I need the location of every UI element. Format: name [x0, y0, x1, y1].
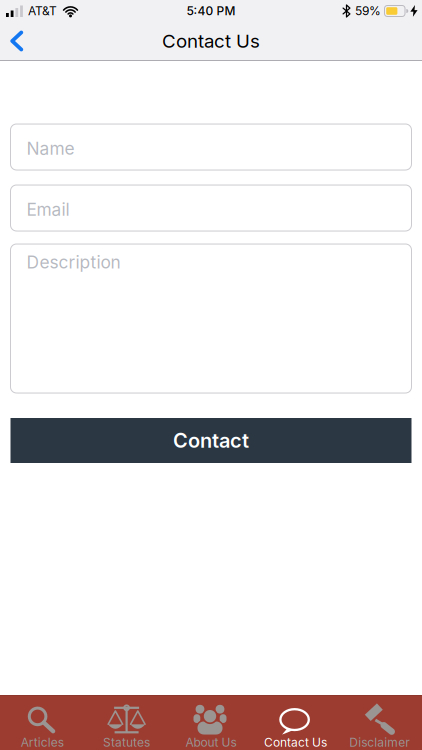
staticText: AT&T	[28, 4, 57, 18]
staticText: Contact Us	[264, 735, 327, 750]
staticText: 59%	[355, 4, 381, 18]
button[interactable]: About Us	[169, 701, 253, 749]
button[interactable]: Articles	[0, 701, 84, 749]
staticText: Articles	[21, 735, 64, 750]
staticText: Statutes	[103, 735, 150, 750]
staticText: Email	[26, 199, 69, 220]
staticText: Description	[26, 252, 120, 272]
button[interactable]: Contact	[10, 418, 411, 463]
staticText: Contact	[173, 429, 249, 452]
button[interactable]: Statutes	[84, 701, 169, 749]
staticText: Disclaimer	[349, 735, 410, 750]
button[interactable]: Disclaimer	[338, 701, 422, 749]
button[interactable]: Contact Us	[253, 701, 338, 749]
staticText: 5:40 PM	[186, 4, 235, 18]
staticText: Name	[26, 138, 74, 159]
staticText: About Us	[185, 735, 236, 750]
staticText: Contact Us	[162, 30, 260, 52]
button[interactable]: Back	[0, 21, 24, 60]
